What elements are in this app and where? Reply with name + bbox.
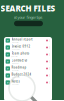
staticText: ▸	[7, 74, 8, 77]
staticText: ▸	[7, 60, 8, 63]
staticText: ▸	[7, 46, 8, 49]
staticText: XLS · 318 KB	[12, 48, 20, 50]
staticText: ▸	[7, 53, 8, 56]
staticText: Contract v3	[12, 59, 28, 62]
staticText: TXT · 12 KB	[12, 83, 19, 85]
button[interactable]: ▸	[4, 37, 52, 44]
staticText: Team photo	[12, 52, 30, 55]
staticText: at your fingertips	[13, 15, 42, 20]
staticText: KEY · 4.2 MB	[12, 69, 19, 71]
button[interactable]: ▸	[4, 58, 52, 65]
staticText: PDF · 2.4 MB	[12, 41, 19, 43]
button[interactable]: ▸	[4, 79, 52, 86]
staticText: Budget 2024	[12, 73, 32, 76]
button[interactable]: ▸	[4, 65, 52, 72]
staticText: Notes	[12, 80, 20, 83]
staticText: XLS · 512 KB	[12, 76, 20, 78]
button[interactable]: ▸	[4, 44, 52, 51]
button[interactable]: ▸	[4, 72, 52, 79]
button[interactable]: ▸	[4, 51, 52, 58]
staticText: JPG · 1.1 MB	[12, 55, 18, 57]
button[interactable]: Search	[14, 21, 43, 26]
staticText: DOC · 96 KB	[12, 62, 19, 64]
staticText: ▸	[7, 81, 8, 84]
staticText: Roadmap	[12, 66, 27, 69]
staticText: SEARCH FILES	[0, 3, 55, 14]
staticText: Annual report	[12, 38, 33, 41]
staticText: ▸	[7, 67, 8, 70]
staticText: Invoice 0912	[12, 45, 31, 48]
staticText: ▸	[7, 39, 8, 42]
